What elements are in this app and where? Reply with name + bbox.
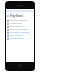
button[interactable]: Payment methods — [6, 31, 34, 34]
button[interactable]: My apps & games — [6, 19, 34, 22]
staticText: Payment methods — [10, 31, 30, 34]
button[interactable]: Parent guide — [6, 37, 34, 40]
staticText: Account settings — [10, 28, 28, 31]
button[interactable]: Notifications — [6, 22, 34, 25]
staticText: Subscriptions — [10, 25, 23, 28]
staticText: Notifications — [10, 22, 22, 25]
button[interactable]: Play Store — [6, 14, 34, 18]
staticText: Parent guide — [10, 37, 24, 40]
staticText: My apps & games — [10, 19, 27, 22]
button[interactable]: Account settings — [6, 28, 34, 31]
button[interactable]: Subscriptions — [6, 25, 34, 28]
button[interactable]: Play Protect — [6, 34, 34, 37]
other: Home — [18, 64, 22, 68]
staticText: Play Store — [10, 14, 23, 18]
staticText: Play Protect — [10, 34, 23, 37]
